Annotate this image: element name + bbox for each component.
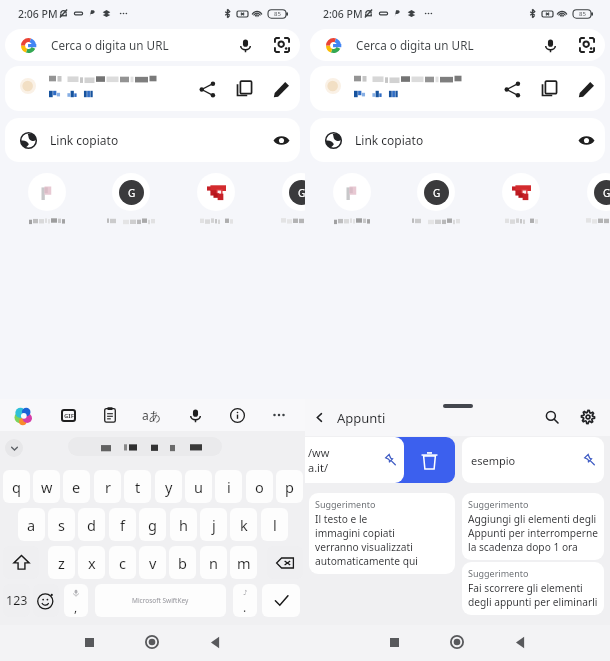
button[interactable]: Link copiato bbox=[5, 118, 300, 162]
button[interactable]: l bbox=[261, 508, 288, 541]
button[interactable]: Edit bbox=[266, 74, 296, 104]
button[interactable]: z bbox=[48, 546, 75, 579]
button[interactable]: i bbox=[215, 470, 242, 503]
button[interactable]: Recent apps bbox=[376, 625, 412, 661]
button[interactable]: ♪ bbox=[233, 584, 257, 617]
button[interactable]: Cerca o digita un URL bbox=[310, 29, 605, 61]
button[interactable]: b bbox=[169, 546, 196, 579]
staticText: o bbox=[255, 477, 264, 497]
button[interactable]: Copilot bbox=[9, 401, 37, 429]
staticText: automaticamente qui bbox=[315, 554, 418, 568]
button[interactable]: k bbox=[230, 508, 257, 541]
button[interactable]: Share bbox=[192, 74, 222, 104]
button[interactable]: Back bbox=[306, 404, 332, 430]
button[interactable] bbox=[68, 437, 222, 456]
button[interactable]: g bbox=[139, 508, 166, 541]
button[interactable]: j bbox=[200, 508, 227, 541]
button[interactable]: f bbox=[109, 508, 136, 541]
button[interactable]: m bbox=[230, 546, 257, 579]
button[interactable]: Google Lens bbox=[572, 30, 602, 60]
button[interactable]: u bbox=[185, 470, 212, 503]
button[interactable]: o bbox=[246, 470, 273, 503]
button[interactable]: Google Lens bbox=[267, 30, 297, 60]
button[interactable]: p bbox=[276, 470, 303, 503]
button[interactable]: Shortcut bbox=[21, 173, 73, 225]
button[interactable]: h bbox=[170, 508, 197, 541]
button[interactable]: e bbox=[63, 470, 90, 503]
button[interactable]: s bbox=[48, 508, 75, 541]
button[interactable]: Shortcut bbox=[580, 173, 610, 225]
button[interactable]: Collapse bbox=[5, 439, 23, 457]
button[interactable]: Suggerimento bbox=[462, 562, 604, 615]
button[interactable]: Edit bbox=[571, 74, 601, 104]
staticText: i bbox=[227, 477, 231, 497]
button[interactable]: Shortcut bbox=[275, 173, 327, 225]
button[interactable]: Home bbox=[134, 625, 170, 661]
staticText: Il testo e le bbox=[315, 512, 368, 526]
button[interactable]: , bbox=[64, 584, 88, 617]
button[interactable]: Shortcut bbox=[190, 173, 242, 225]
button[interactable]: Voice input bbox=[181, 401, 209, 429]
button[interactable]: Search bbox=[538, 403, 566, 431]
button[interactable]: Link copiato bbox=[310, 118, 605, 162]
button[interactable]: Suggerimento bbox=[462, 493, 604, 560]
button[interactable]: Emoji bbox=[33, 584, 59, 617]
button[interactable]: q bbox=[3, 470, 30, 503]
button[interactable]: Cerca o digita un URL bbox=[5, 29, 300, 61]
staticText: c bbox=[119, 553, 126, 573]
staticText: Fai scorrere gli elementi bbox=[468, 581, 583, 595]
button[interactable]: Info bbox=[223, 401, 251, 429]
staticText: 2:06 PM bbox=[323, 7, 363, 21]
button[interactable]: Translate bbox=[138, 401, 166, 429]
button[interactable]: Suggerimento bbox=[309, 493, 455, 574]
button[interactable]: a bbox=[18, 508, 45, 541]
button[interactable]: Copy bbox=[534, 74, 564, 104]
staticText: n bbox=[209, 553, 218, 573]
button[interactable]: v bbox=[139, 546, 166, 579]
button[interactable]: Home bbox=[439, 625, 475, 661]
button[interactable]: Share bbox=[497, 74, 527, 104]
staticText: immagini copiati bbox=[315, 526, 395, 540]
button[interactable]: esempio bbox=[462, 437, 604, 483]
button[interactable]: Enter bbox=[262, 584, 300, 617]
button[interactable]: x bbox=[78, 546, 105, 579]
staticText: esempio bbox=[471, 453, 516, 468]
button[interactable]: r bbox=[94, 470, 121, 503]
button[interactable]: Voice search bbox=[230, 30, 260, 60]
button[interactable]: Delete bbox=[305, 437, 455, 483]
staticText: 85 bbox=[579, 10, 586, 18]
button[interactable]: Copy bbox=[229, 74, 259, 104]
button[interactable]: Preview bbox=[571, 125, 601, 155]
staticText: h bbox=[179, 515, 188, 535]
button[interactable]: w bbox=[33, 470, 60, 503]
button[interactable]: c bbox=[109, 546, 136, 579]
button[interactable]: 123 bbox=[3, 584, 30, 617]
button[interactable]: Microsoft SwiftKey bbox=[95, 584, 226, 617]
button[interactable]: Recent apps bbox=[71, 625, 107, 661]
button[interactable]: n bbox=[200, 546, 227, 579]
button[interactable]: y bbox=[155, 470, 182, 503]
button[interactable]: Shortcut bbox=[410, 173, 462, 225]
button[interactable]: Back bbox=[502, 625, 538, 661]
staticText: G bbox=[128, 186, 136, 200]
button[interactable]: Backspace bbox=[267, 546, 303, 579]
button[interactable]: GIF bbox=[54, 401, 82, 429]
button[interactable]: Shortcut bbox=[105, 173, 157, 225]
button[interactable]: Settings bbox=[574, 403, 602, 431]
button[interactable]: Shift bbox=[3, 546, 39, 579]
button[interactable]: t bbox=[124, 470, 151, 503]
staticText: t bbox=[135, 477, 141, 497]
button[interactable]: Clipboard bbox=[96, 401, 124, 429]
staticText: f bbox=[120, 515, 125, 535]
button[interactable]: Preview bbox=[266, 125, 296, 155]
button[interactable]: Shortcut bbox=[326, 173, 378, 225]
button[interactable]: Shortcut bbox=[495, 173, 547, 225]
button[interactable]: d bbox=[78, 508, 105, 541]
staticText: m bbox=[237, 553, 251, 573]
staticText: q bbox=[12, 477, 21, 497]
button[interactable]: Voice search bbox=[535, 30, 565, 60]
button[interactable]: Back bbox=[197, 625, 233, 661]
staticText: /ww bbox=[308, 445, 330, 460]
button[interactable]: /ww bbox=[305, 437, 404, 483]
button[interactable]: More options bbox=[265, 401, 293, 429]
